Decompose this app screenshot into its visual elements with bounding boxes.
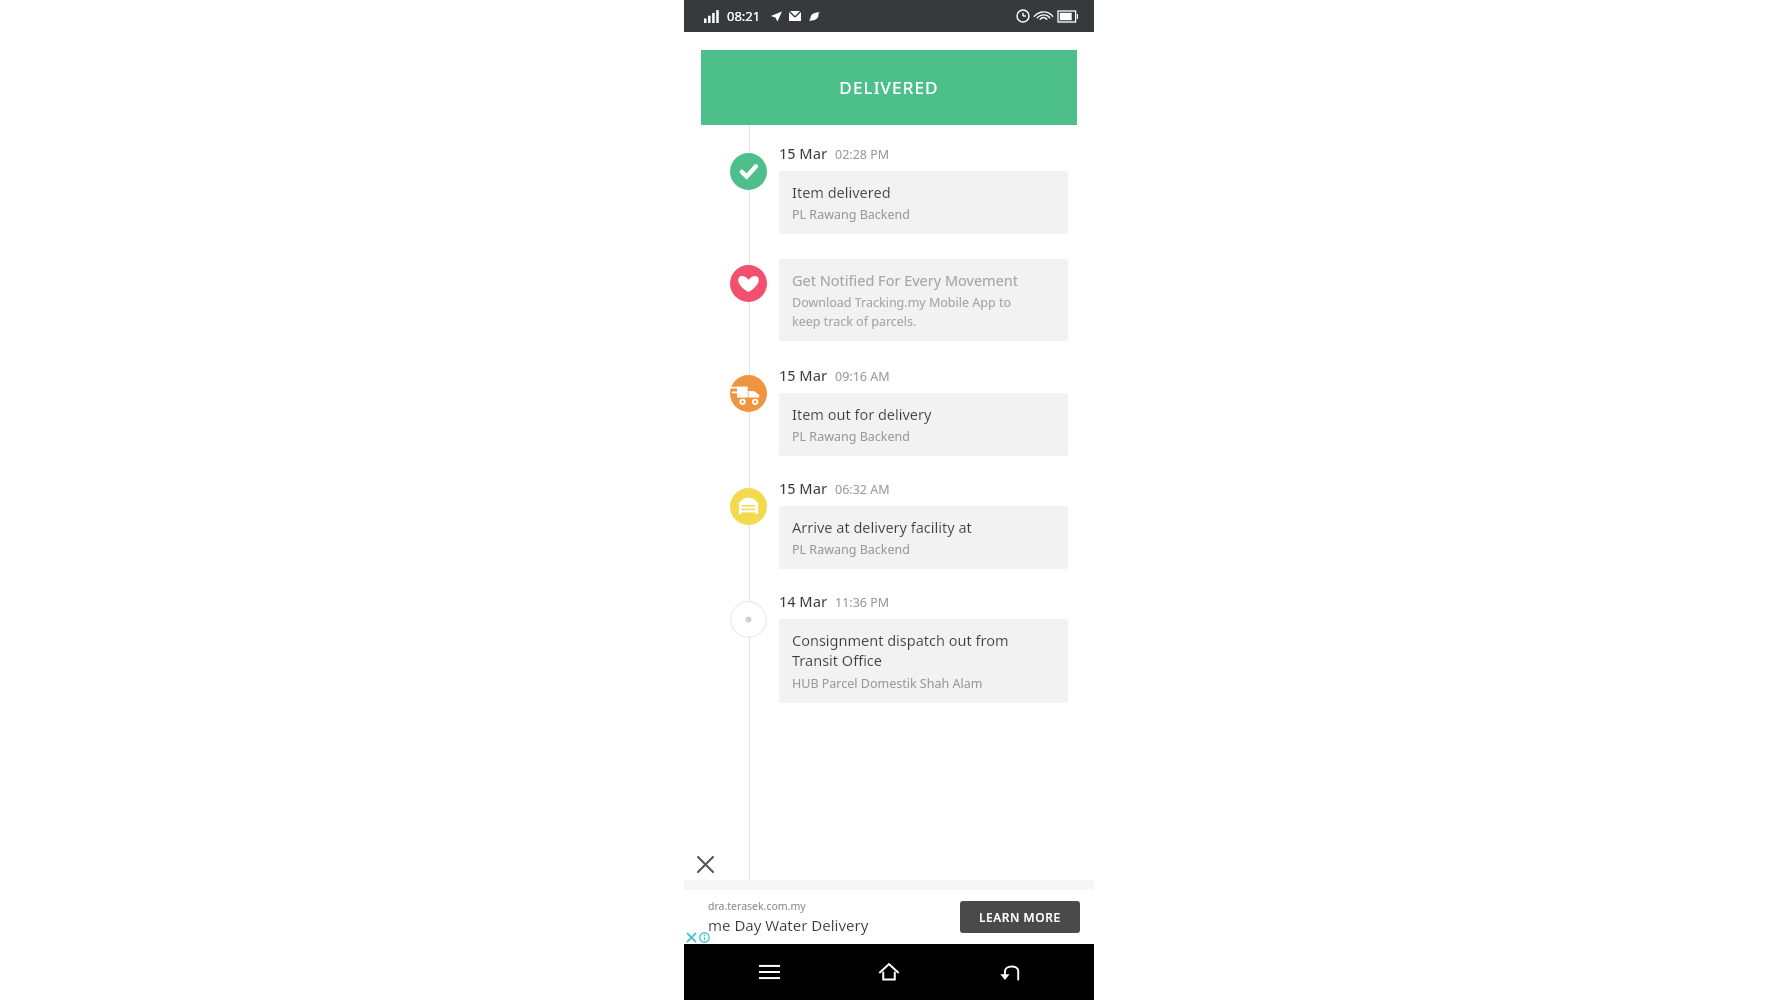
- button[interactable]: Menu: [734, 948, 804, 996]
- staticText: 15 Mar: [779, 478, 828, 498]
- staticText: PL Rawang Backend: [792, 206, 910, 223]
- staticText: DELIVERED: [839, 76, 939, 99]
- staticText: HUB Parcel Domestik Shah Alam: [792, 675, 983, 692]
- staticText: 15 Mar: [779, 365, 828, 385]
- staticText: 15 Mar: [779, 143, 828, 163]
- staticText: Get Notified For Every Movement: [792, 270, 1019, 290]
- staticText: Arrive at delivery facility at: [792, 517, 972, 537]
- button[interactable]: DELIVERED: [701, 50, 1077, 125]
- staticText: Download Tracking.my Mobile App to keep …: [792, 294, 1011, 330]
- staticText: Item delivered: [792, 182, 891, 202]
- staticText: Item out for delivery: [792, 404, 932, 424]
- button[interactable]: Home: [854, 948, 924, 996]
- button[interactable]: LEARN MORE: [960, 901, 1080, 933]
- staticText: 09:16 AM: [835, 368, 890, 385]
- button[interactable]: Ad info: [699, 932, 710, 943]
- button[interactable]: 14 Mar: [684, 591, 1094, 703]
- staticText: PL Rawang Backend: [792, 541, 910, 558]
- staticText: 11:36 PM: [835, 594, 890, 611]
- staticText: 08:21: [727, 7, 761, 25]
- staticText: Consignment dispatch out from Transit Of…: [792, 630, 1009, 671]
- button[interactable]: Dismiss: [686, 932, 697, 943]
- staticText: me Day Water Delivery: [708, 915, 869, 935]
- staticText: 02:28 PM: [835, 146, 890, 163]
- button[interactable]: Close ad: [688, 848, 722, 880]
- staticText: 14 Mar: [779, 591, 828, 611]
- staticText: LEARN MORE: [979, 909, 1061, 925]
- button[interactable]: Get Notified For Every Movement: [684, 259, 1094, 341]
- button[interactable]: dra.terasek.com.my: [684, 890, 1094, 944]
- button[interactable]: 15 Mar: [684, 143, 1094, 234]
- button[interactable]: 15 Mar: [684, 365, 1094, 456]
- button[interactable]: 15 Mar: [684, 478, 1094, 569]
- staticText: 06:32 AM: [835, 481, 890, 498]
- button[interactable]: Back: [974, 948, 1044, 996]
- staticText: dra.terasek.com.my: [708, 899, 806, 913]
- staticText: PL Rawang Backend: [792, 428, 910, 445]
